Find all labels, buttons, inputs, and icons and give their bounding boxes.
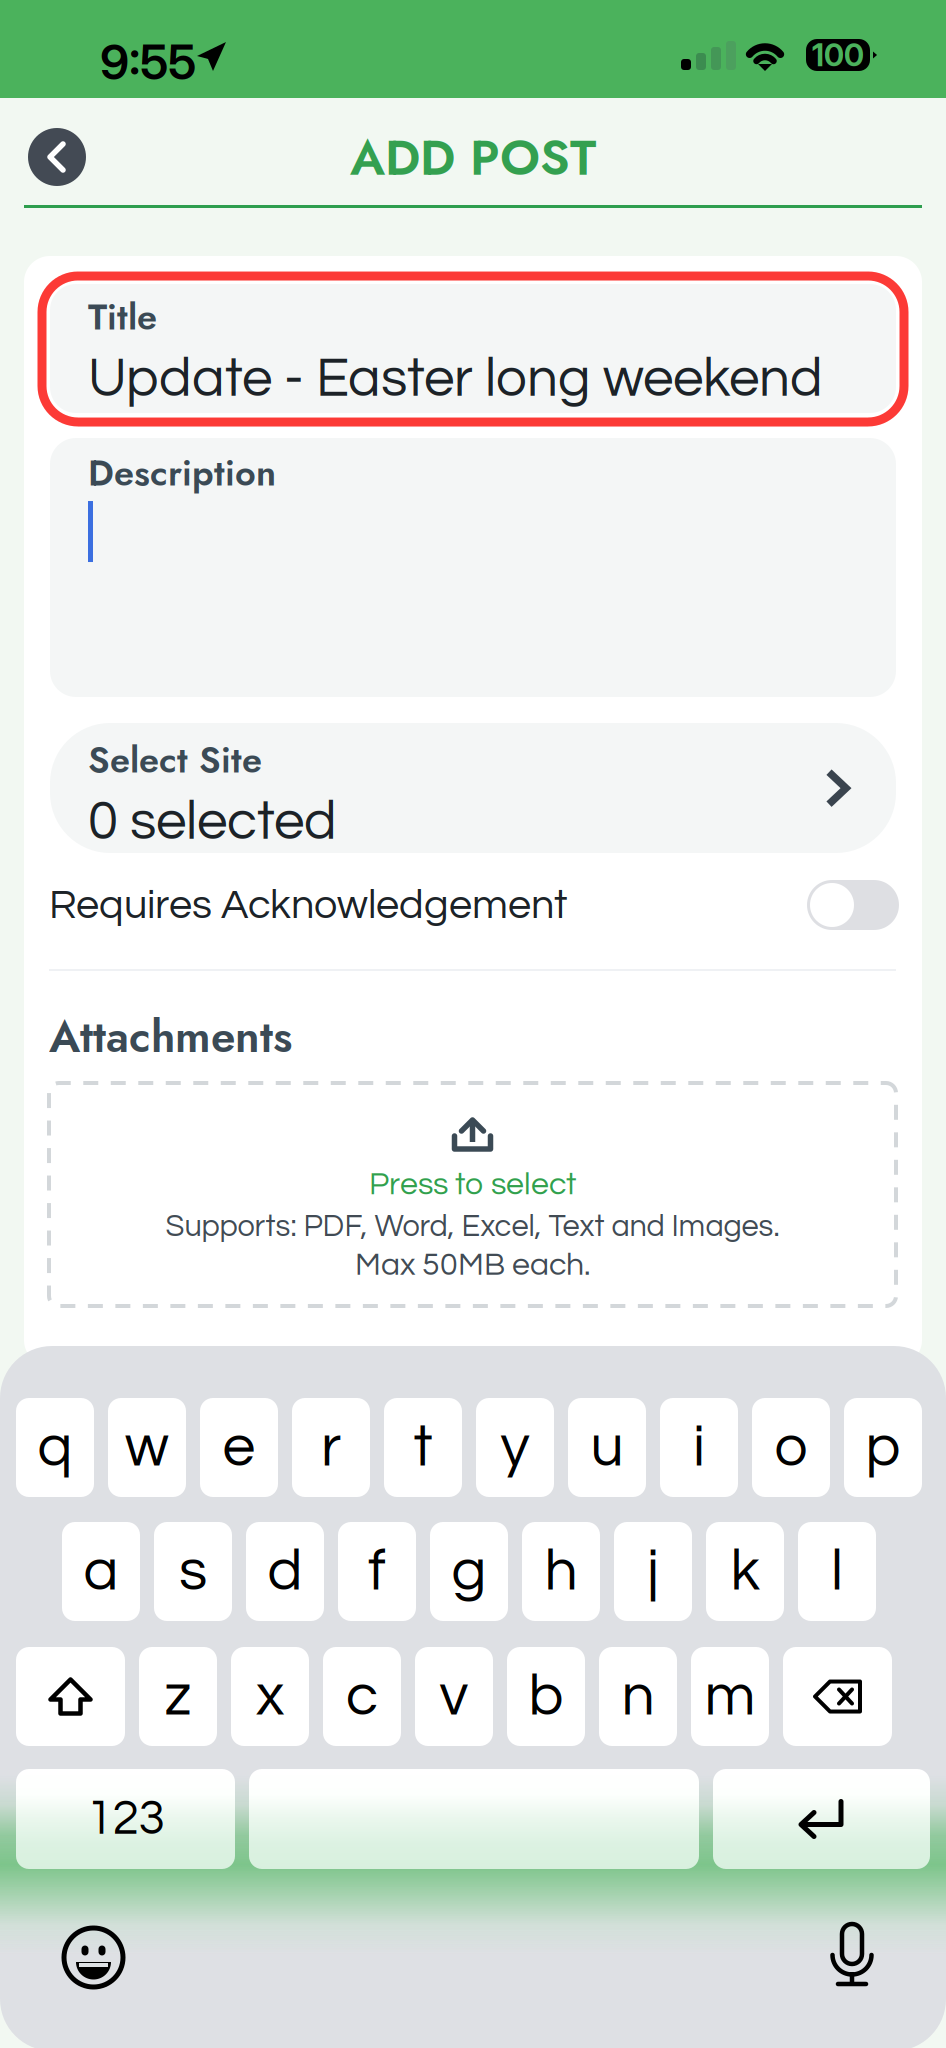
staticText: Attachments [49,1005,292,1069]
staticText: a [83,1541,118,1602]
button[interactable]: Shift [16,1647,125,1746]
staticText: e [222,1417,255,1478]
button[interactable]: g [430,1522,508,1621]
staticText: d [267,1541,302,1602]
staticText: p [865,1417,900,1478]
button[interactable]: q [16,1398,94,1497]
staticText: Max 50MB each. [355,1248,590,1281]
button[interactable]: i [660,1398,738,1497]
staticText: c [346,1666,378,1727]
staticText: Select Site [88,734,262,786]
button[interactable]: u [568,1398,646,1497]
button[interactable]: space [249,1769,699,1869]
button[interactable]: w [108,1398,186,1497]
staticText: x [256,1666,284,1727]
button[interactable]: d [246,1522,324,1621]
button[interactable]: m [691,1647,769,1746]
button[interactable]: Return [713,1769,930,1869]
button[interactable]: Requires Acknowledgement [807,880,899,930]
staticText: b [528,1666,563,1727]
staticText: s [179,1541,207,1602]
staticText: o [774,1417,807,1478]
button[interactable]: n [599,1647,677,1746]
staticText: 0 selected [88,794,337,850]
staticText: ADD POST [350,122,596,193]
button[interactable]: j [614,1522,692,1621]
button[interactable]: Back [28,128,86,186]
button[interactable]: c [323,1647,401,1746]
staticText: Requires Acknowledgement [49,884,567,927]
button[interactable]: l [798,1522,876,1621]
button[interactable]: s [154,1522,232,1621]
button[interactable]: r [292,1398,370,1497]
button[interactable]: x [231,1647,309,1746]
staticText: Supports: PDF, Word, Excel, Text and Ima… [165,1211,779,1243]
staticText: q [37,1417,72,1478]
staticText: z [164,1666,191,1727]
staticText: j [647,1541,659,1602]
staticText: g [451,1541,486,1602]
button[interactable]: o [752,1398,830,1497]
staticText: r [321,1417,341,1478]
button[interactable]: p [844,1398,922,1497]
staticText: m [704,1666,755,1727]
staticText: Press to select [369,1168,576,1201]
staticText: Description [88,447,276,499]
staticText: l [831,1541,843,1602]
button[interactable]: b [507,1647,585,1746]
button[interactable]: Emoji [64,1928,123,1987]
staticText: u [590,1417,623,1478]
staticText: 123 [86,1794,164,1844]
button[interactable]: e [200,1398,278,1497]
button[interactable]: k [706,1522,784,1621]
button[interactable]: t [384,1398,462,1497]
staticText: Title [88,291,157,343]
button[interactable]: h [522,1522,600,1621]
staticText: y [500,1417,529,1478]
staticText: t [413,1417,432,1478]
button[interactable]: 123 [16,1769,235,1869]
button[interactable]: Delete [783,1647,892,1746]
button[interactable]: Select Site [50,723,896,853]
button[interactable]: a [62,1522,140,1621]
staticText: v [439,1666,468,1727]
staticText: 9:55 [100,33,196,91]
button[interactable]: y [476,1398,554,1497]
button[interactable]: f [338,1522,416,1621]
staticText: h [544,1541,577,1602]
staticText: 100 [812,36,864,73]
staticText: k [730,1541,759,1602]
staticText: w [125,1417,169,1478]
button[interactable]: Press to select [49,1083,896,1306]
button[interactable]: z [139,1647,217,1746]
staticText: Update - Easter long weekend [88,351,823,407]
staticText: i [693,1417,705,1478]
button[interactable]: Dictate [832,1924,873,1987]
staticText: f [368,1541,386,1602]
staticText: n [621,1666,654,1727]
button[interactable]: v [415,1647,493,1746]
